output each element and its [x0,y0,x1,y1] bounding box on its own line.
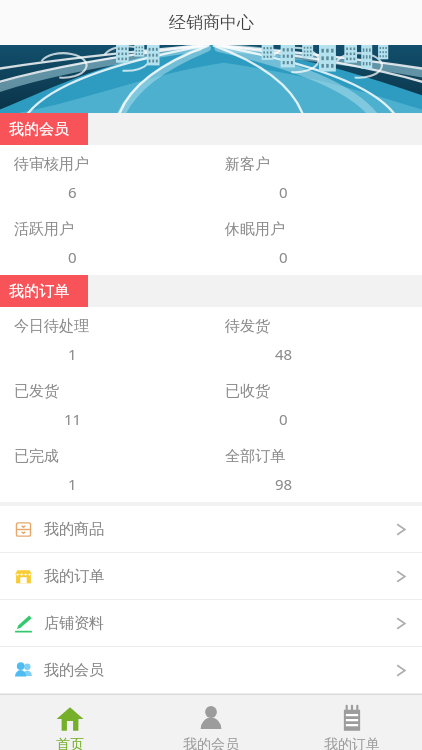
other: Open 我的订单 [395,567,407,586]
staticText: 我的订单 [44,567,104,586]
staticText: 6 [68,182,77,202]
staticText: 已发货 [14,382,59,401]
staticText: 已完成 [14,447,59,466]
staticText: 1 [68,344,77,364]
button[interactable]: 待审核用户 [0,145,211,210]
staticText: 我的订单 [324,736,380,750]
staticText: 活跃用户 [14,220,74,239]
button[interactable]: 新客户 [211,145,422,210]
button[interactable]: 已发货 [0,372,211,437]
staticText: 48 [275,344,293,364]
staticText: 休眠用户 [225,220,285,239]
button[interactable]: 店铺资料 [0,600,422,646]
staticText: 待发货 [225,317,270,336]
button[interactable]: 我的会员 [0,647,422,693]
staticText: 0 [68,247,77,267]
staticText: 新客户 [225,155,270,174]
button[interactable]: 我的会员 [140,695,281,750]
staticText: 首页 [56,736,84,750]
button[interactable]: 我的商品 [0,506,422,552]
staticText: 11 [64,409,82,429]
other: Open 店铺资料 [395,614,407,633]
staticText: 0 [279,182,288,202]
staticText: 98 [275,474,293,494]
staticText: 今日待处理 [14,317,89,336]
staticText: 店铺资料 [44,614,104,633]
button[interactable]: 全部订单 [211,437,422,502]
staticText: 0 [279,409,288,429]
staticText: 已收货 [225,382,270,401]
staticText: 待审核用户 [14,155,89,174]
button[interactable]: 首页 [0,695,140,750]
button[interactable]: 今日待处理 [0,307,211,372]
staticText: 全部订单 [225,447,285,466]
other: Open 我的商品 [395,520,407,539]
button[interactable]: 休眠用户 [211,210,422,275]
button[interactable]: 我的订单 [0,553,422,599]
staticText: 0 [279,247,288,267]
staticText: 我的商品 [44,520,104,539]
staticText: 我的会员 [9,120,69,139]
staticText: 1 [68,474,77,494]
button[interactable]: 已收货 [211,372,422,437]
button[interactable]: 活跃用户 [0,210,211,275]
staticText: 我的会员 [44,661,104,680]
staticText: 经销商中心 [169,12,254,33]
other: Open 我的会员 [395,661,407,680]
button[interactable]: 待发货 [211,307,422,372]
button[interactable]: 我的订单 [281,695,422,750]
button[interactable]: 已完成 [0,437,211,502]
staticText: 我的会员 [183,736,239,750]
staticText: 我的订单 [9,282,69,301]
